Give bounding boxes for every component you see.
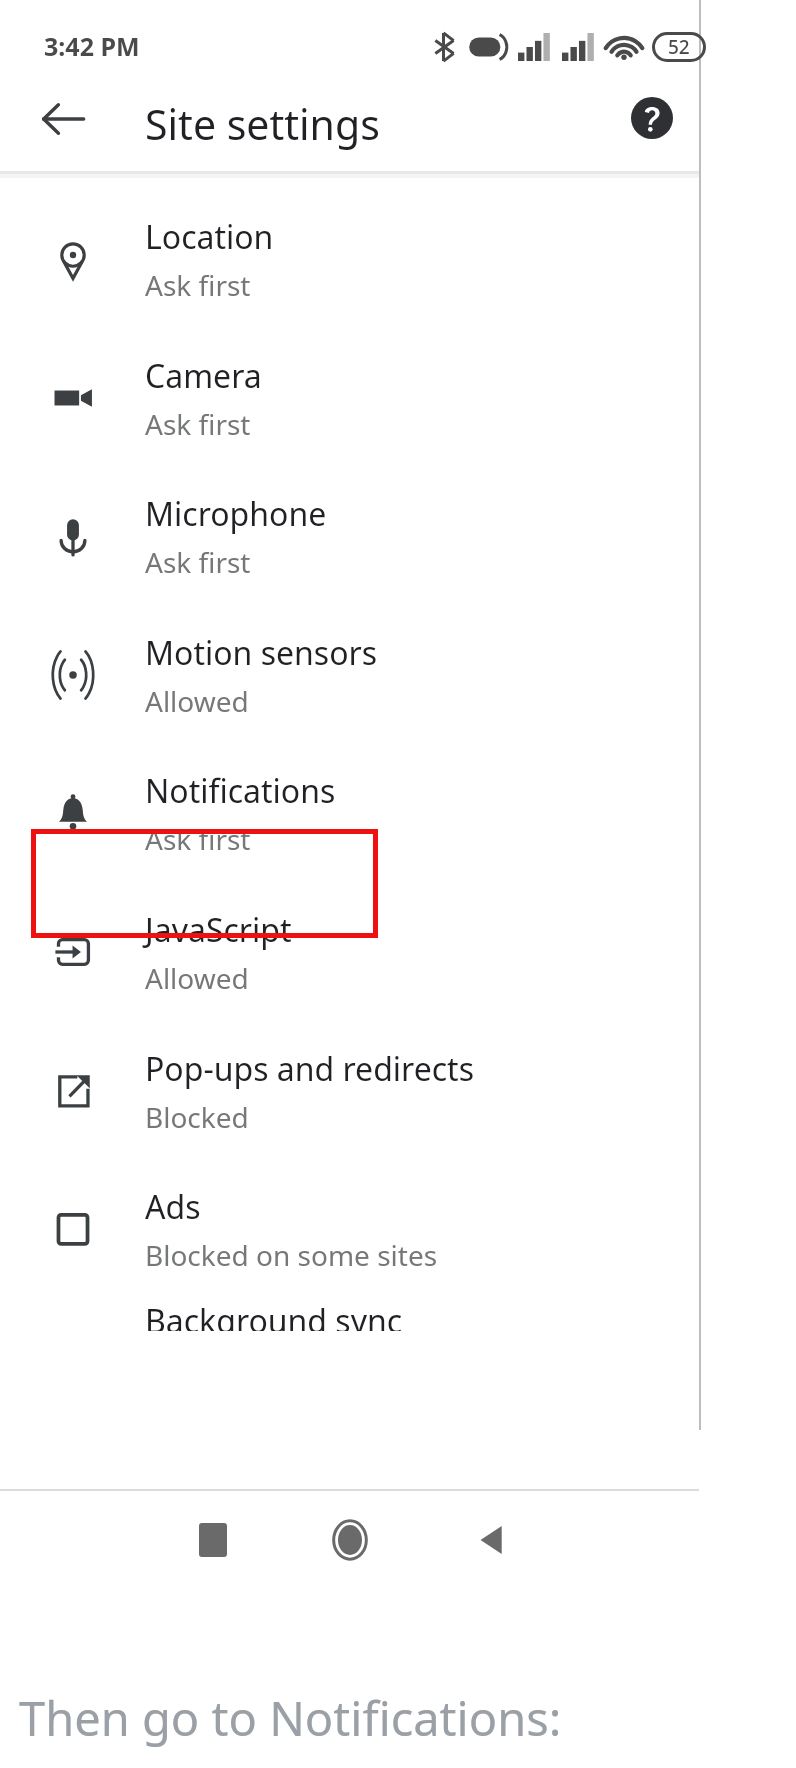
staticText: Ask first [145,543,251,581]
button[interactable]: Microphone [0,467,699,605]
staticText: Camera [145,354,262,398]
staticText: Pop-ups and redirects [145,1047,474,1091]
button[interactable]: Camera [0,329,699,467]
staticText: 3:42 PM [44,29,140,63]
staticText: 52 [668,34,690,60]
staticText: Background sync [145,1299,403,1331]
staticText: Ask first [145,405,251,443]
staticText: Location [145,215,274,259]
button[interactable]: Help [620,86,684,150]
staticText: Blocked on some sites [145,1236,438,1274]
button[interactable]: Location [0,190,699,328]
button[interactable]: Back [457,1505,527,1575]
button[interactable]: Notifications [0,744,699,882]
staticText: Site settings [145,96,380,152]
staticText: Allowed [145,682,249,720]
button[interactable]: Home [315,1505,385,1575]
staticText: JavaScript [145,908,292,952]
button[interactable]: Motion sensors [0,606,699,744]
button[interactable]: Ads [0,1160,699,1298]
staticText: Ask first [145,266,251,304]
staticText: Microphone [145,492,327,536]
button[interactable]: Pop-ups and redirects [0,1022,699,1160]
staticText: Ads [145,1185,201,1229]
staticText: Then go to Notifications: [19,1686,562,1750]
button[interactable]: JavaScript [0,883,699,1021]
staticText: Motion sensors [145,631,378,675]
staticText: Notifications [145,769,336,813]
staticText: Allowed [145,959,249,997]
button[interactable]: Background sync [0,1299,699,1331]
staticText: Blocked [145,1098,249,1136]
staticText: Ask first [145,820,251,858]
button[interactable]: Back [30,86,96,152]
button[interactable]: Recent apps [178,1505,248,1575]
